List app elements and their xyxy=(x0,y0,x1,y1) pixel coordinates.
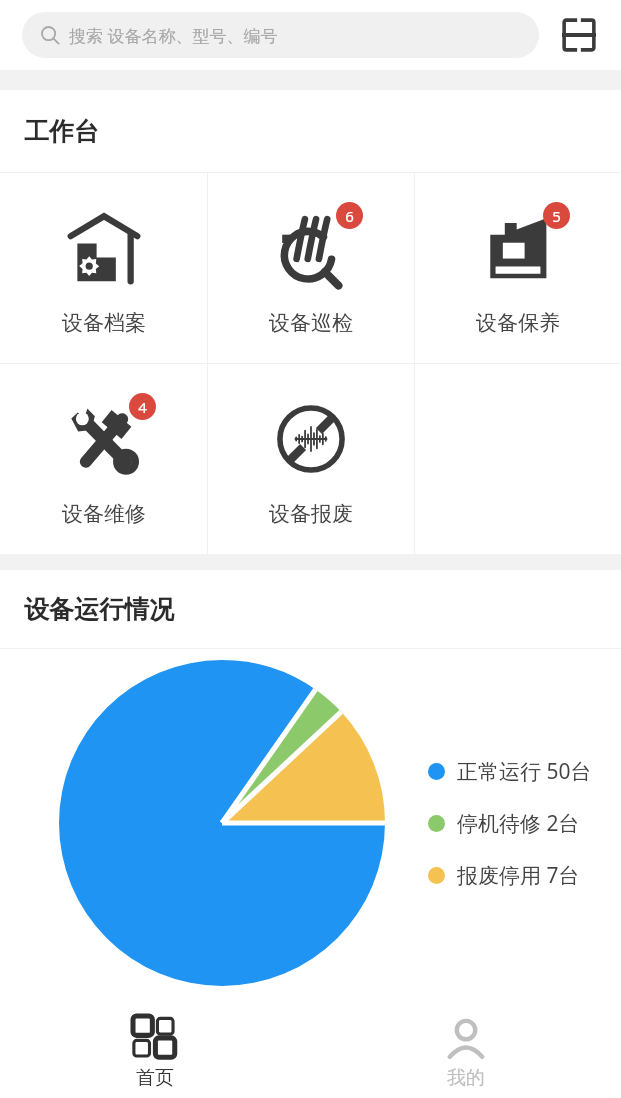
staticText: 首页 xyxy=(136,1066,174,1090)
staticText: 设备维修 xyxy=(62,501,146,527)
button[interactable]: 设备报废 xyxy=(208,364,414,554)
staticText: 设备巡检 xyxy=(269,310,353,336)
staticText: 5 xyxy=(552,206,561,226)
staticText: 停机待修 2台 xyxy=(457,809,580,838)
staticText: 4 xyxy=(138,397,147,417)
button[interactable]: 首页 xyxy=(0,1008,310,1098)
button[interactable]: 搜索 设备名称、型号、编号 xyxy=(22,12,539,58)
button[interactable]: 我的 xyxy=(310,1008,621,1098)
staticText: 我的 xyxy=(447,1066,485,1090)
button[interactable]: 5 xyxy=(415,173,621,363)
staticText: 6 xyxy=(345,206,354,226)
staticText: 工作台 xyxy=(24,116,99,147)
staticText: 报废停用 7台 xyxy=(457,861,580,890)
staticText: 正常运行 50台 xyxy=(457,757,592,786)
button[interactable]: 扫一扫 xyxy=(557,13,601,57)
staticText: 搜索 设备名称、型号、编号 xyxy=(69,24,278,47)
button[interactable]: 4 xyxy=(0,364,207,554)
staticText: 设备报废 xyxy=(269,501,353,527)
staticText: 设备运行情况 xyxy=(24,594,174,625)
staticText: 设备档案 xyxy=(62,310,146,336)
button[interactable]: 设备档案 xyxy=(0,173,207,363)
staticText: 设备保养 xyxy=(476,310,560,336)
button[interactable]: 6 xyxy=(208,173,414,363)
